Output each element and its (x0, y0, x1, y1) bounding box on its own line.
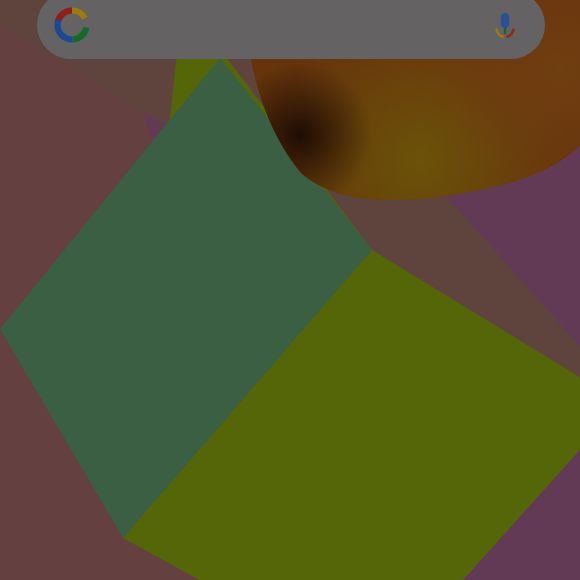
button[interactable]: Google search (0, 0, 580, 580)
